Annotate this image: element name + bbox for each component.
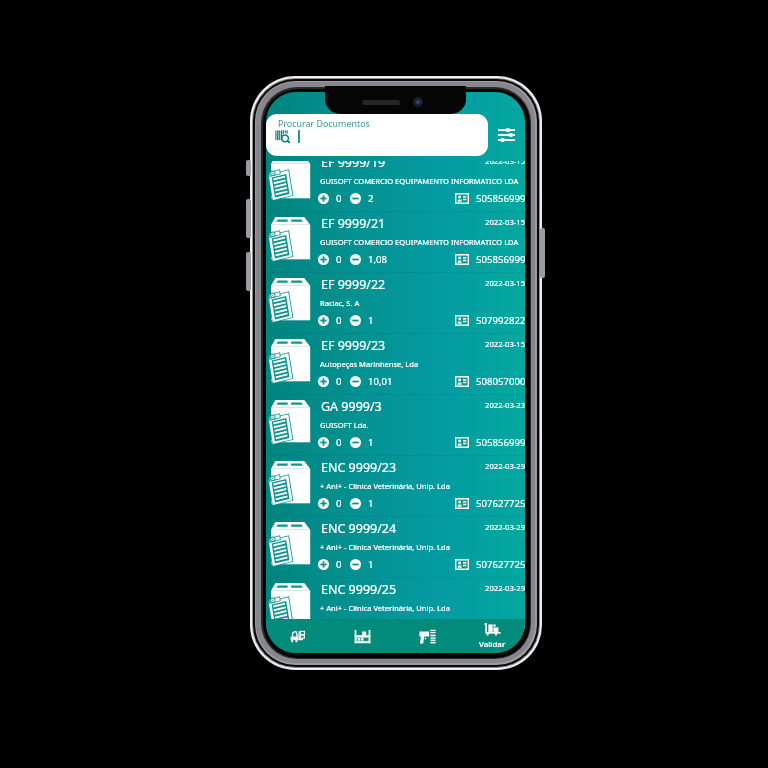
- button[interactable]: Leitor: [395, 619, 460, 653]
- staticText: ENC 9999/24: [321, 520, 397, 537]
- staticText: 507627725: [476, 619, 525, 632]
- staticText: GUISOFT COMERCIO EQUIPAMENTO INFORMATICO…: [320, 237, 522, 247]
- staticText: 0: [336, 192, 342, 205]
- button[interactable]: EF 9999/22: [266, 272, 525, 333]
- staticText: + Ani+ - Clínica Veterinária, Unip. Lda: [320, 603, 522, 613]
- staticText: 2022-03-23: [485, 400, 525, 410]
- staticText: EF 9999/23: [321, 337, 386, 354]
- staticText: 0: [336, 497, 342, 510]
- staticText: 507627725: [476, 497, 525, 510]
- staticText: 2022-03-15: [485, 217, 525, 227]
- staticText: 0: [336, 314, 342, 327]
- button[interactable]: Procurar Documentos: [266, 114, 488, 156]
- staticText: 1: [368, 558, 374, 571]
- staticText: ENC 9999/23: [321, 459, 397, 476]
- button[interactable]: EF 9999/23: [266, 333, 525, 394]
- staticText: GA 9999/3: [321, 398, 382, 415]
- button[interactable]: ENC 9999/23: [266, 455, 525, 516]
- staticText: ENC 9999/25: [321, 581, 397, 598]
- staticText: 508057000: [476, 375, 525, 388]
- staticText: 1: [368, 314, 374, 327]
- staticText: 0: [336, 558, 342, 571]
- button[interactable]: Validar: [460, 619, 525, 653]
- staticText: + Ani+ - Clínica Veterinária, Unip. Lda: [320, 481, 522, 491]
- staticText: 2022-03-29: [485, 583, 525, 593]
- staticText: Raclac, S. A: [320, 298, 522, 308]
- staticText: 1,08: [368, 253, 388, 266]
- staticText: 505856999: [476, 192, 525, 205]
- button[interactable]: GA 9999/3: [266, 394, 525, 455]
- staticText: 1: [368, 619, 374, 632]
- staticText: 2022-03-15: [485, 278, 525, 288]
- staticText: 505856999: [476, 253, 525, 266]
- staticText: + Ani+ - Clínica Veterinária, Unip. Lda: [320, 542, 522, 552]
- button[interactable]: Empilhador: [266, 619, 330, 653]
- staticText: 10,01: [368, 375, 393, 388]
- staticText: 507627725: [476, 558, 525, 571]
- staticText: 0: [336, 253, 342, 266]
- button[interactable]: EF 9999/21: [266, 211, 525, 272]
- staticText: 0: [336, 436, 342, 449]
- staticText: 1: [368, 436, 374, 449]
- staticText: 2022-03-15: [485, 339, 525, 349]
- staticText: 0: [336, 375, 342, 388]
- staticText: 505856999: [476, 436, 525, 449]
- staticText: GUISOFT Lda.: [320, 420, 522, 430]
- button[interactable]: ENC 9999/24: [266, 516, 525, 577]
- staticText: EF 9999/22: [321, 276, 386, 293]
- staticText: Autopeças Marinhense, Lda: [320, 359, 522, 369]
- button[interactable]: EF 9999/19: [266, 161, 525, 211]
- staticText: 2022-03-15: [485, 161, 525, 166]
- button[interactable]: Armazem: [330, 619, 395, 653]
- staticText: 1: [368, 497, 374, 510]
- staticText: 2: [368, 192, 374, 205]
- button[interactable]: ENC 9999/25: [266, 577, 525, 638]
- staticText: GUISOFT COMERCIO EQUIPAMENTO INFORMATICO…: [320, 176, 522, 186]
- staticText: 2022-03-29: [485, 522, 525, 532]
- staticText: 2022-03-29: [485, 461, 525, 471]
- staticText: EF 9999/21: [321, 215, 386, 232]
- staticText: EF 9999/19: [321, 161, 386, 171]
- staticText: Procurar Documentos: [278, 117, 370, 129]
- staticText: 507992822: [476, 314, 525, 327]
- button[interactable]: Filtros: [488, 114, 525, 156]
- staticText: Validar: [479, 639, 506, 650]
